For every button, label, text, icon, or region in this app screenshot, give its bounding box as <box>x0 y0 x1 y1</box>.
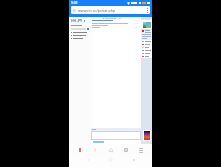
button[interactable]: Forward <box>90 145 100 155</box>
staticText: 30 <box>124 148 128 152</box>
button[interactable] <box>144 131 150 140</box>
button[interactable] <box>141 52 152 55</box>
button[interactable] <box>91 27 141 30</box>
button[interactable] <box>141 43 152 46</box>
button[interactable]: Menu <box>136 145 146 155</box>
button[interactable]: Home <box>106 145 116 155</box>
button[interactable] <box>91 20 141 23</box>
button[interactable]: www.nn.ru/privat.php <box>71 6 150 14</box>
staticText: 9:39 <box>71 1 78 5</box>
button[interactable]: Downloads <box>75 145 85 155</box>
button[interactable]: Recents <box>129 155 138 164</box>
button[interactable] <box>141 46 152 49</box>
button[interactable] <box>141 49 152 52</box>
button[interactable] <box>141 40 152 43</box>
button[interactable] <box>69 31 91 34</box>
button[interactable] <box>141 30 152 40</box>
button[interactable] <box>91 131 141 140</box>
button[interactable] <box>91 23 141 27</box>
button[interactable] <box>69 34 91 37</box>
staticText: HH <box>71 18 77 23</box>
staticText: www.nn.ru/privat.php <box>78 8 116 13</box>
button[interactable] <box>141 55 152 58</box>
button[interactable] <box>69 37 91 40</box>
button[interactable]: Tabs <box>121 145 131 155</box>
button[interactable]: Home <box>106 155 115 164</box>
staticText: .PY <box>77 18 83 23</box>
button[interactable] <box>143 22 151 28</box>
